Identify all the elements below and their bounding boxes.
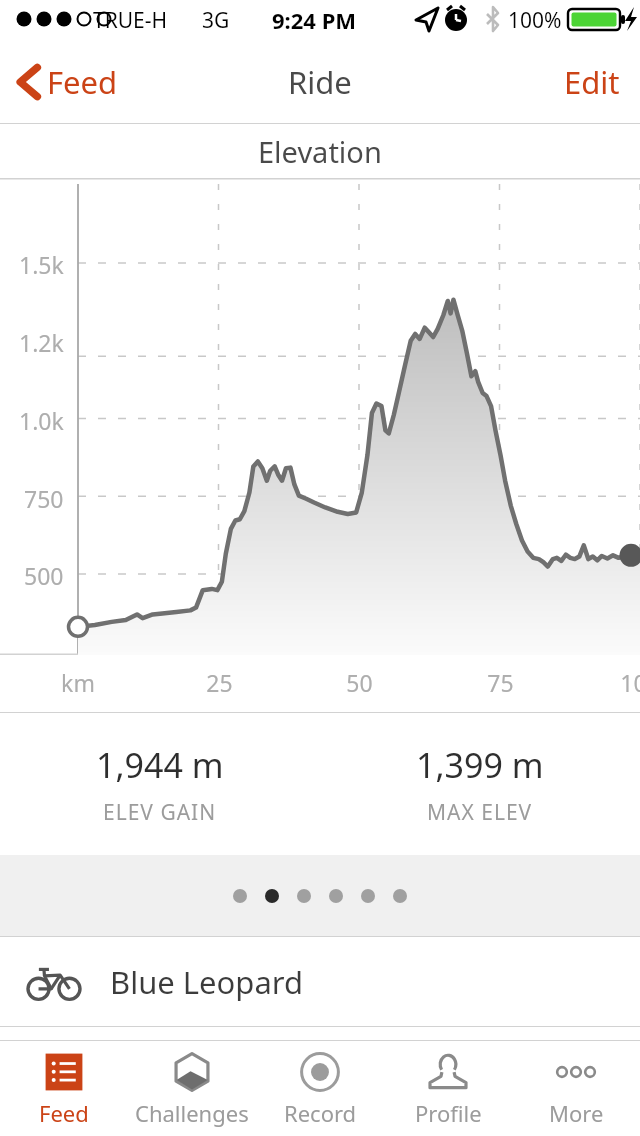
- button[interactable]: Record: [256, 1041, 384, 1136]
- staticText: Profile: [415, 1098, 482, 1128]
- staticText: km: [61, 667, 95, 698]
- staticText: 1,944 m: [96, 742, 224, 788]
- staticText: ELEV GAIN: [103, 798, 217, 827]
- staticText: 1.0k: [19, 405, 64, 436]
- button[interactable]: Challenges: [128, 1041, 256, 1136]
- staticText: 25: [206, 667, 233, 698]
- button[interactable]: Page 4: [329, 889, 343, 903]
- button[interactable]: Feed: [10, 55, 126, 109]
- staticText: Blue Leopard: [110, 961, 304, 1003]
- staticText: 50: [346, 667, 373, 698]
- staticText: 1,399 m: [416, 742, 544, 788]
- staticText: 1.2k: [19, 327, 64, 358]
- staticText: Edit: [564, 61, 620, 103]
- staticText: 9:24 PM: [272, 5, 357, 35]
- staticText: 75: [487, 667, 514, 698]
- button[interactable]: 1,399 m: [320, 713, 640, 855]
- button[interactable]: Page 2: [265, 889, 279, 903]
- button[interactable]: Page 5: [361, 889, 375, 903]
- button[interactable]: Feed: [0, 1041, 128, 1136]
- button[interactable]: More: [512, 1041, 640, 1136]
- staticText: MAX ELEV: [427, 798, 533, 827]
- staticText: More: [549, 1098, 604, 1128]
- staticText: Elevation: [258, 132, 382, 171]
- button[interactable]: Page 6: [393, 889, 407, 903]
- staticText: Feed: [47, 61, 118, 103]
- button[interactable]: 1,944 m: [0, 713, 320, 855]
- button[interactable]: Page 3: [297, 889, 311, 903]
- staticText: 1.5k: [19, 249, 64, 280]
- button[interactable]: Page 1: [233, 889, 247, 903]
- staticText: Challenges: [135, 1098, 249, 1128]
- staticText: Feed: [39, 1098, 89, 1128]
- staticText: Record: [284, 1098, 357, 1128]
- staticText: 100%: [508, 6, 562, 35]
- button[interactable]: Edit: [554, 53, 630, 111]
- staticText: Ride: [288, 61, 352, 103]
- staticText: 500: [24, 560, 64, 591]
- button[interactable]: Profile: [384, 1041, 512, 1136]
- staticText: 3G: [202, 6, 230, 35]
- button[interactable]: Blue Leopard: [0, 937, 640, 1027]
- staticText: 100: [620, 667, 640, 698]
- staticText: 750: [24, 483, 64, 514]
- staticText: TRUE-H: [93, 6, 168, 35]
